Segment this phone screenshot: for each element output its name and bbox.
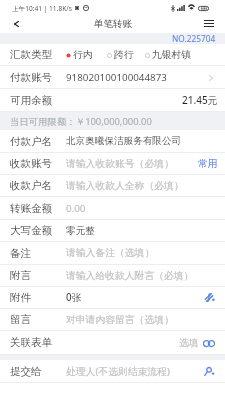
button[interactable]: 九银村镇 bbox=[145, 49, 192, 61]
button[interactable]: 行内 bbox=[66, 49, 93, 61]
staticText: 上午10:41 | 11.8K/s bbox=[12, 4, 72, 13]
staticText: 21.45元 bbox=[182, 93, 218, 107]
button[interactable]: Link form bbox=[203, 339, 215, 347]
staticText: 转账金额 bbox=[10, 202, 52, 215]
staticText: 选填 bbox=[179, 337, 199, 349]
staticText: 北京奥曦保洁服务有限公司 bbox=[66, 135, 182, 147]
button[interactable]: Menu bbox=[199, 16, 218, 30]
staticText: NO.225704 bbox=[172, 33, 216, 44]
staticText: 附言 bbox=[10, 269, 31, 282]
staticText: 请输入收款账号（必填） bbox=[66, 158, 174, 170]
button[interactable]: Back bbox=[7, 16, 26, 32]
staticText: 关联表单 bbox=[10, 336, 52, 349]
button[interactable]: Attach file bbox=[204, 293, 215, 302]
staticText: 常用 bbox=[198, 158, 218, 170]
staticText: 留言 bbox=[10, 313, 31, 326]
staticText: 单笔转账 bbox=[94, 18, 132, 30]
staticText: 跨行 bbox=[114, 49, 134, 61]
staticText: 汇款类型 bbox=[10, 48, 52, 61]
button[interactable]: 常用 bbox=[198, 158, 218, 170]
staticText: 918020100100044873 bbox=[66, 71, 167, 84]
staticText: 当日可用限额：￥100,000,000.00 bbox=[10, 115, 152, 128]
staticText: 0张 bbox=[66, 291, 82, 304]
staticText: 0.00 bbox=[66, 202, 86, 215]
staticText: 付款账号 bbox=[10, 71, 52, 84]
staticText: 处理人(不选则结束流程) bbox=[66, 365, 170, 378]
button[interactable]: 跨行 bbox=[107, 49, 134, 61]
staticText: 提交给 bbox=[10, 365, 42, 378]
staticText: 请输入备注（选填） bbox=[66, 247, 155, 259]
staticText: 零元整 bbox=[66, 225, 96, 237]
staticText: 请输入给收款人附言（必填） bbox=[66, 270, 194, 282]
staticText: 附件 bbox=[10, 291, 31, 304]
staticText: 对申请内容留言（选填） bbox=[66, 314, 174, 326]
staticText: 备注 bbox=[10, 247, 31, 260]
staticText: 大写金额 bbox=[10, 224, 52, 237]
staticText: 可用余额 bbox=[10, 94, 52, 107]
staticText: 行内 bbox=[73, 49, 93, 61]
staticText: 收款户名 bbox=[10, 179, 52, 192]
staticText: 付款户名 bbox=[10, 135, 52, 148]
staticText: 九银村镇 bbox=[152, 49, 192, 61]
staticText: 收款账号 bbox=[10, 157, 52, 170]
button[interactable]: Add approver bbox=[204, 367, 215, 377]
staticText: 请输入收款人全称（必填） bbox=[66, 180, 184, 192]
